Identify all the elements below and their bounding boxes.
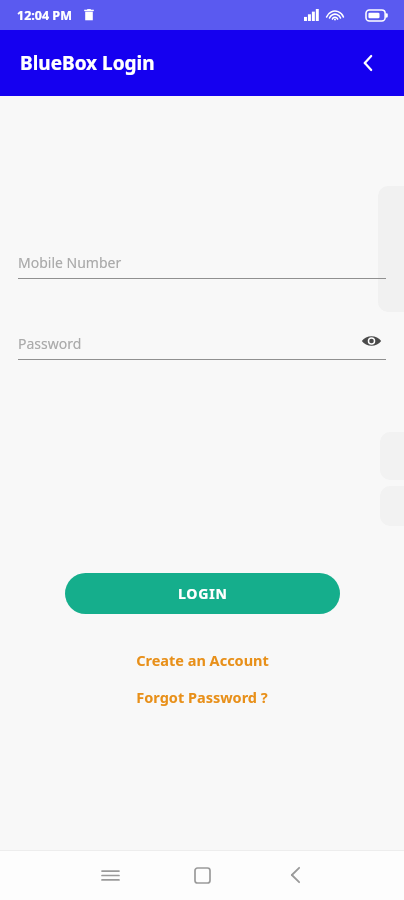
button[interactable]: Back bbox=[273, 853, 317, 897]
staticText: Mobile Number bbox=[18, 253, 122, 272]
staticText: LOGIN bbox=[178, 584, 228, 603]
button[interactable]: Mobile Number bbox=[18, 246, 386, 279]
button[interactable]: Forgot Password ? bbox=[0, 684, 404, 710]
button[interactable]: Password bbox=[18, 327, 386, 360]
staticText: Create an Account bbox=[136, 650, 269, 670]
button[interactable]: Back bbox=[346, 41, 390, 85]
button[interactable]: Create an Account bbox=[0, 647, 404, 673]
staticText: 12:04 PM bbox=[17, 7, 72, 24]
button[interactable]: Recents bbox=[88, 853, 132, 897]
button[interactable]: Home bbox=[180, 853, 224, 897]
staticText: Password bbox=[18, 334, 82, 353]
staticText: Forgot Password ? bbox=[136, 687, 268, 707]
button[interactable]: Show password bbox=[356, 326, 386, 356]
button[interactable]: LOGIN bbox=[65, 573, 340, 614]
staticText: BlueBox Login bbox=[20, 50, 155, 76]
